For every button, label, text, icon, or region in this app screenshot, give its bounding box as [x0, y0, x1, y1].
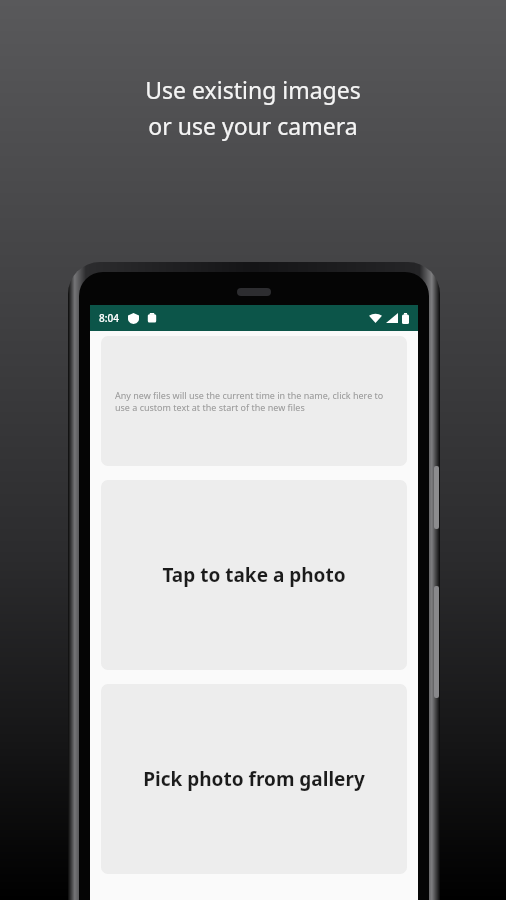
- staticText: Any new files will use the current time …: [115, 389, 393, 414]
- staticText: Pick photo from gallery: [143, 766, 365, 792]
- button[interactable]: Pick photo from gallery: [101, 684, 407, 874]
- other: Volume buttons: [434, 586, 439, 698]
- staticText: Use existing images: [145, 74, 361, 105]
- staticText: Tap to take a photo: [162, 562, 346, 588]
- button[interactable]: Any new files will use the current time …: [101, 336, 407, 466]
- staticText: 8:04: [99, 311, 119, 325]
- other: Power button: [434, 466, 439, 529]
- staticText: or use your camera: [148, 110, 358, 141]
- button[interactable]: Tap to take a photo: [101, 480, 407, 670]
